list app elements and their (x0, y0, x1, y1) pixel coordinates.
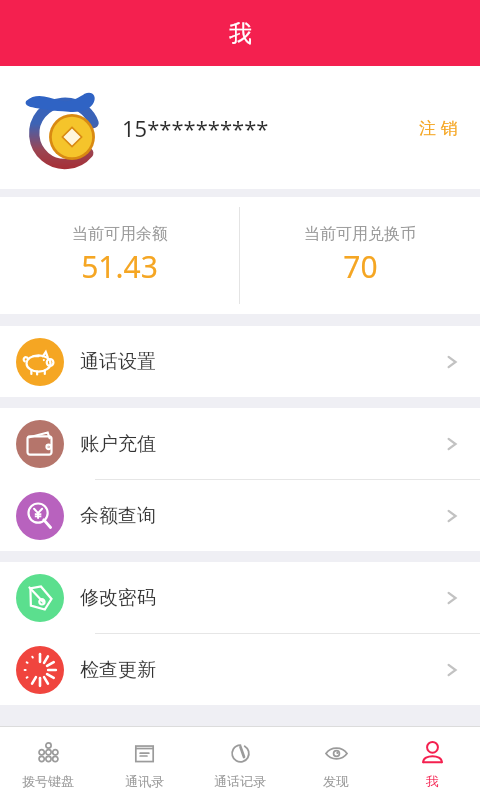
staticText: 通话设置 (80, 350, 156, 374)
button[interactable]: 注 销 (413, 110, 464, 145)
staticText: 发现 (323, 773, 349, 789)
button[interactable]: 当前可用余额 (0, 197, 239, 314)
button[interactable]: 余额查询 (0, 480, 480, 551)
staticText: 拨号键盘 (22, 773, 74, 789)
staticText: 我 (229, 19, 252, 48)
button[interactable]: 我 (384, 727, 480, 800)
staticText: 当前可用兑换币 (304, 224, 416, 244)
staticText: 检查更新 (80, 658, 156, 682)
staticText: 修改密码 (80, 586, 156, 610)
button[interactable]: 通话记录 (192, 727, 288, 800)
button[interactable]: 修改密码 (0, 562, 480, 633)
button[interactable]: 15********** (0, 66, 480, 189)
staticText: 注 销 (419, 116, 458, 139)
staticText: 通讯录 (125, 773, 164, 789)
staticText: 51.43 (81, 246, 158, 287)
button[interactable]: 检查更新 (0, 634, 480, 705)
staticText: 当前可用余额 (72, 224, 168, 244)
button[interactable]: 通话设置 (0, 326, 480, 397)
button[interactable]: 发现 (288, 727, 384, 800)
button[interactable]: 拨号键盘 (0, 727, 96, 800)
staticText: 通话记录 (214, 773, 266, 789)
staticText: 账户充值 (80, 432, 156, 456)
button[interactable]: 账户充值 (0, 408, 480, 479)
staticText: 余额查询 (80, 504, 156, 528)
button[interactable]: 当前可用兑换币 (240, 197, 480, 314)
button[interactable]: 通讯录 (96, 727, 192, 800)
staticText: 我 (426, 773, 439, 789)
staticText: 15********** (122, 113, 269, 143)
staticText: 70 (343, 246, 378, 287)
